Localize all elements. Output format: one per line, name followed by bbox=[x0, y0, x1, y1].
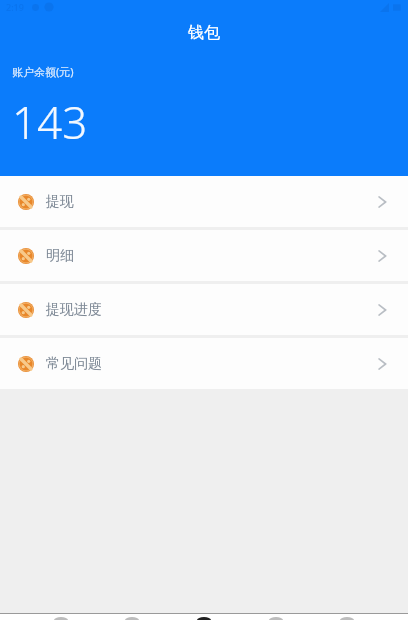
staticText: 提现进度 bbox=[46, 301, 102, 319]
button[interactable]: 明细 bbox=[0, 230, 408, 281]
staticText: 常见问题 bbox=[46, 355, 102, 373]
staticText: 明细 bbox=[46, 247, 74, 265]
staticText: 账户余额(元) bbox=[12, 64, 74, 79]
staticText: 143 bbox=[12, 92, 88, 152]
button[interactable]: 提现 bbox=[0, 176, 408, 227]
button[interactable]: Profile bbox=[336, 617, 358, 624]
staticText: 提现 bbox=[46, 193, 74, 211]
button[interactable]: Home bbox=[50, 617, 72, 624]
button[interactable]: 常见问题 bbox=[0, 338, 408, 389]
button[interactable]: Messages bbox=[265, 617, 287, 624]
button[interactable]: 提现进度 bbox=[0, 284, 408, 335]
staticText: 2:19 bbox=[6, 1, 24, 13]
button[interactable]: Orders bbox=[121, 617, 143, 624]
button[interactable]: Wallet bbox=[193, 617, 215, 624]
staticText: 钱包 bbox=[0, 23, 408, 43]
